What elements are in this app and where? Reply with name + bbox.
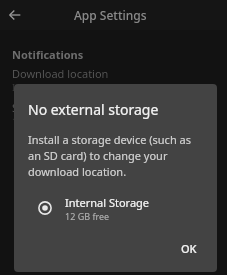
staticText: 12 GB free: [65, 210, 110, 222]
button[interactable]: Download location: [0, 62, 227, 96]
staticText: Download location: [12, 66, 109, 81]
button[interactable]: Back: [0, 0, 30, 30]
button[interactable]: Storage: [0, 96, 227, 130]
staticText: App Settings: [74, 7, 147, 23]
staticText: OK: [181, 241, 197, 256]
staticText: Internal storage: [12, 81, 81, 93]
staticText: Internal Storage: [65, 195, 150, 210]
button[interactable]: OK: [171, 235, 207, 262]
staticText: 12 GB free: [12, 115, 57, 127]
button[interactable]: Internal Storage: [14, 191, 217, 225]
staticText: No external storage: [28, 100, 159, 119]
staticText: Install a storage device (such as an SD …: [28, 132, 203, 179]
staticText: Storage: [12, 100, 53, 115]
staticText: Notifications: [12, 47, 84, 62]
